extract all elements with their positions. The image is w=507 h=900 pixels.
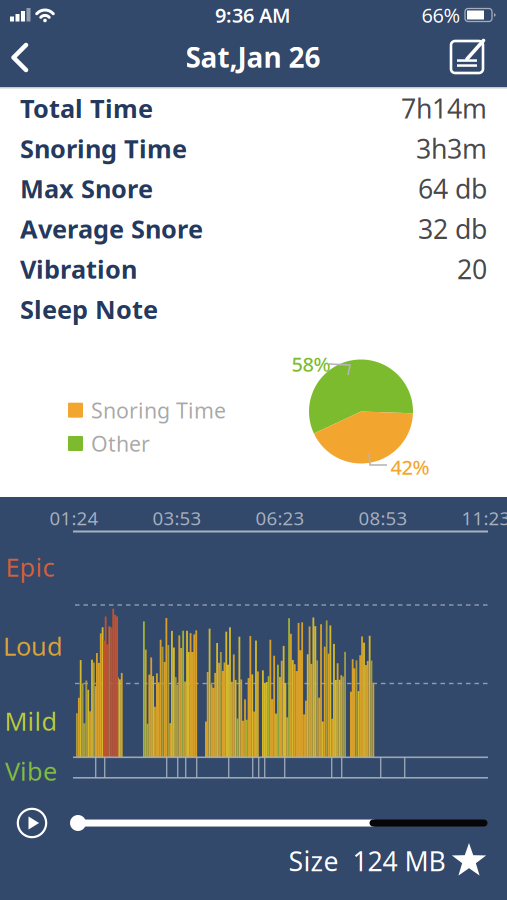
button[interactable]: Favorite — [449, 841, 489, 881]
staticText: Max Snore — [20, 172, 153, 205]
button[interactable]: Edit — [448, 39, 486, 77]
staticText: 58% — [291, 351, 330, 377]
staticText: 3h3m — [416, 131, 487, 166]
staticText: 7h14m — [401, 90, 487, 126]
staticText: Average Snore — [20, 212, 203, 245]
staticText: Snoring Time — [91, 396, 226, 424]
staticText: Loud — [3, 629, 63, 663]
staticText: 66% — [421, 2, 460, 28]
button[interactable]: Playback position — [67, 810, 495, 836]
staticText: Sleep Note — [20, 292, 158, 326]
staticText: Snoring Time — [20, 131, 187, 165]
staticText: Total Time — [20, 91, 153, 125]
staticText: 06:23 — [255, 506, 304, 530]
staticText: 11:23 — [461, 506, 507, 530]
staticText: 20 — [457, 251, 487, 287]
staticText: Size 124 MB — [288, 843, 445, 879]
staticText: 64 db — [418, 171, 487, 206]
staticText: Vibration — [20, 252, 137, 286]
staticText: Epic — [5, 550, 54, 584]
staticText: 42% — [390, 454, 429, 480]
staticText: 08:53 — [358, 506, 407, 530]
staticText: Mild — [4, 704, 57, 738]
button[interactable]: Play — [15, 806, 49, 840]
staticText: 01:24 — [49, 506, 98, 530]
staticText: 32 db — [418, 211, 487, 246]
staticText: 9:36 AM — [215, 2, 291, 28]
staticText: Other — [91, 429, 150, 458]
button[interactable]: Back — [2, 41, 42, 75]
staticText: Vibe — [5, 754, 57, 788]
staticText: 03:53 — [152, 506, 201, 530]
staticText: Sat,Jan 26 — [185, 38, 320, 76]
